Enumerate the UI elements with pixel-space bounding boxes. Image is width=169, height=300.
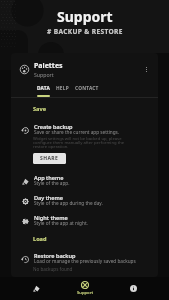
staticText: Save <box>33 105 46 113</box>
button[interactable]: App theme <box>11 171 158 191</box>
staticText: Day theme <box>34 194 64 202</box>
staticText: App theme <box>34 174 64 182</box>
button[interactable]: Info <box>109 277 157 300</box>
button[interactable]: Day theme <box>11 191 158 211</box>
button[interactable]: SHARE <box>33 153 66 164</box>
staticText: CONTACT <box>75 85 99 92</box>
staticText: HELP <box>56 85 69 92</box>
staticText: Style of the app. <box>34 180 70 186</box>
staticText: Create backup <box>34 123 73 131</box>
button[interactable]: Restore backup <box>11 249 158 266</box>
staticText: # BACKUP & RESTORE <box>47 27 123 36</box>
staticText: Load <box>33 235 47 243</box>
button[interactable]: Create backup <box>11 120 158 137</box>
button[interactable]: Palettes <box>12 277 61 300</box>
staticText: SHARE <box>40 155 59 162</box>
staticText: No backups found <box>33 266 73 272</box>
staticText: Style of the app at night. <box>34 220 88 226</box>
staticText: Support <box>57 7 113 26</box>
button[interactable]: Support <box>61 277 109 300</box>
staticText: Style of the app during the day. <box>34 200 103 206</box>
staticText: Load or manage the previously saved back… <box>34 258 136 264</box>
staticText: Night theme <box>34 214 68 222</box>
button[interactable]: HELP <box>53 85 72 97</box>
button[interactable]: CONTACT <box>72 85 102 97</box>
staticText: Palettes <box>34 61 63 71</box>
button[interactable]: Night theme <box>11 211 158 231</box>
staticText: Support <box>77 290 94 296</box>
button[interactable]: More options <box>139 62 153 76</box>
staticText: Save or share the current app settings. <box>34 129 120 135</box>
button[interactable]: DATA <box>34 85 53 97</box>
staticText: DATA <box>37 85 50 92</box>
staticText: Support <box>34 71 54 78</box>
staticText: Restore backup <box>34 252 76 260</box>
staticText: Widget settings will not be backed up, p… <box>33 136 125 150</box>
